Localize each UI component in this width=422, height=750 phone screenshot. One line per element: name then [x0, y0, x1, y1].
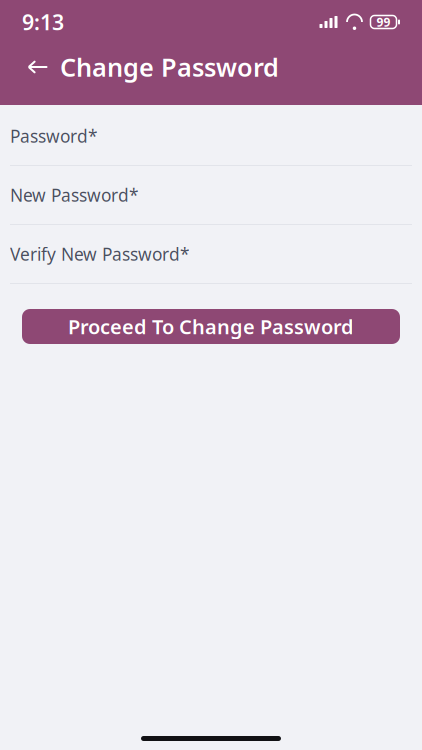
staticText: New Password* [10, 183, 139, 206]
staticText: Proceed To Change Password [68, 313, 354, 340]
button[interactable]: Proceed To Change Password [22, 309, 400, 344]
button[interactable]: Back [0, 44, 60, 90]
staticText: Change Password [60, 50, 279, 84]
staticText: 9:13 [22, 8, 64, 36]
staticText: Verify New Password* [10, 242, 190, 265]
staticText: 99 [376, 14, 390, 30]
staticText: Password* [10, 124, 98, 147]
